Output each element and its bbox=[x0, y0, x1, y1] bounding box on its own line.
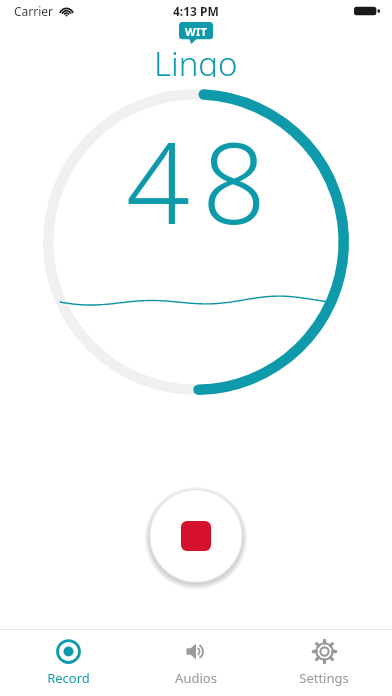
staticText: 4:13 PM bbox=[173, 3, 219, 19]
staticText: Audios bbox=[175, 669, 217, 687]
staticText: 4 bbox=[126, 104, 190, 257]
button[interactable]: Audios bbox=[136, 633, 256, 693]
button[interactable]: Settings bbox=[264, 633, 384, 693]
staticText: Lingo bbox=[154, 41, 238, 77]
staticText: Settings bbox=[299, 669, 349, 687]
staticText: Record bbox=[47, 669, 90, 687]
button[interactable]: Record bbox=[8, 633, 128, 693]
staticText: WIT bbox=[185, 24, 208, 39]
staticText: Carrier bbox=[14, 3, 54, 19]
button[interactable]: Stop recording bbox=[147, 487, 245, 585]
staticText: 8 bbox=[202, 104, 266, 257]
